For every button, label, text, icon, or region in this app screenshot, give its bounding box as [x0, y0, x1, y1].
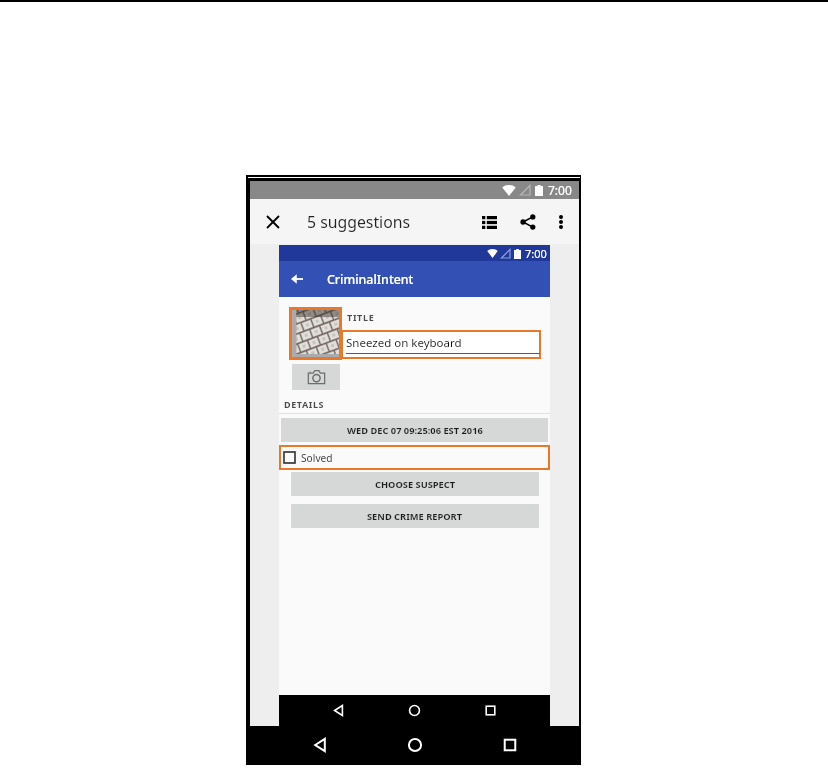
- staticText: CHOOSE SUSPECT: [375, 478, 456, 491]
- button[interactable]: Recents: [498, 733, 522, 757]
- staticText: Sneezed on keyboard: [346, 335, 462, 351]
- button[interactable]: Crime photo: [292, 310, 339, 357]
- button[interactable]: Share: [514, 208, 542, 236]
- staticText: Solved: [301, 451, 333, 465]
- staticText: 7:00: [525, 246, 547, 261]
- button[interactable]: Sneezed on keyboard: [343, 332, 539, 357]
- button[interactable]: CHOOSE SUSPECT: [291, 472, 539, 496]
- button[interactable]: Home: [403, 733, 427, 757]
- button[interactable]: Back: [328, 700, 349, 721]
- button[interactable]: Take photo: [292, 364, 340, 390]
- staticText: DETAILS: [284, 398, 325, 410]
- button[interactable]: Solved: [281, 447, 548, 468]
- button[interactable]: Home: [404, 700, 425, 721]
- staticText: TITLE: [347, 311, 375, 323]
- staticText: SEND CRIME REPORT: [367, 510, 463, 523]
- staticText: 5 suggestions: [307, 211, 411, 233]
- button[interactable]: List view: [475, 208, 503, 236]
- button[interactable]: Navigate up: [285, 267, 309, 291]
- button[interactable]: SEND CRIME REPORT: [291, 504, 539, 528]
- staticText: WED DEC 07 09:25:06 EST 2016: [347, 424, 483, 437]
- staticText: 7:00: [548, 182, 572, 198]
- button[interactable]: Recents: [480, 700, 501, 721]
- button[interactable]: WED DEC 07 09:25:06 EST 2016: [281, 418, 548, 442]
- button[interactable]: Back: [308, 733, 332, 757]
- staticText: CriminalIntent: [327, 271, 414, 288]
- button[interactable]: Close: [256, 205, 290, 239]
- button[interactable]: More options: [549, 210, 573, 234]
